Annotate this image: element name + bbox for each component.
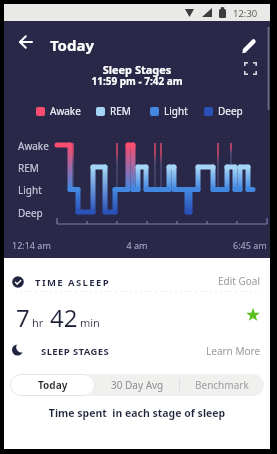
staticText: 12:30 <box>233 7 258 20</box>
staticText: TIME ASLEEP <box>35 276 110 289</box>
button[interactable]: Benchmark <box>180 374 264 396</box>
button[interactable] <box>12 29 40 57</box>
staticText: 7 <box>16 301 30 334</box>
staticText: 6:45 am <box>233 239 267 251</box>
staticText: min <box>80 315 100 330</box>
button[interactable]: SLEEP STAGES <box>4 340 270 362</box>
staticText: Deep <box>218 104 243 118</box>
button[interactable]: 30 Day Avg <box>95 374 179 396</box>
staticText: Learn More <box>206 344 261 358</box>
button[interactable]: TIME ASLEEP <box>4 270 270 292</box>
staticText: 4 am <box>4 239 270 251</box>
staticText: 30 Day Avg <box>111 378 164 392</box>
staticText: Light <box>18 183 42 197</box>
staticText: REM <box>110 104 131 118</box>
staticText: Sleep Stages <box>4 62 270 77</box>
staticText: Edit Goal <box>218 274 261 288</box>
staticText: Awake <box>50 104 81 118</box>
staticText: Awake <box>18 139 49 153</box>
staticText: 11:59 pm - 7:42 am <box>4 74 270 88</box>
staticText: REM <box>18 161 39 175</box>
staticText: 12:14 am <box>12 239 51 251</box>
staticText: Today <box>38 378 68 392</box>
staticText: SLEEP STAGES <box>41 345 110 358</box>
staticText: hr <box>32 315 44 330</box>
button[interactable]: Today <box>10 374 95 396</box>
staticText: Benchmark <box>195 378 249 392</box>
staticText: Deep <box>18 206 43 220</box>
staticText: Today <box>50 35 95 55</box>
button[interactable] <box>240 35 262 57</box>
button[interactable] <box>244 62 257 75</box>
staticText: 42 <box>50 301 78 334</box>
staticText: Time spent in each stage of sleep <box>4 406 270 420</box>
staticText: Light <box>164 104 188 118</box>
